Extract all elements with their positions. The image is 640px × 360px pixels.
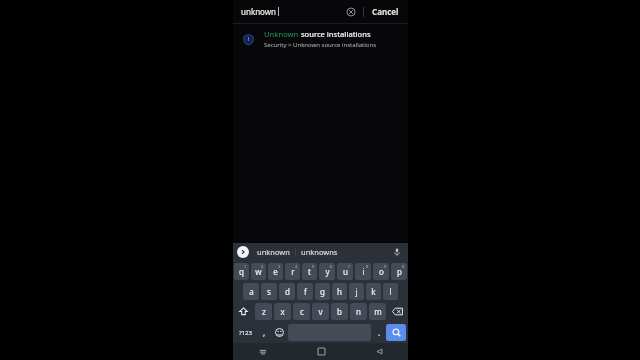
staticText: Security > Unknown source installations [264,41,377,49]
staticText: unknown [257,247,290,257]
button[interactable]: x [274,303,291,320]
button[interactable]: Voice input [390,245,404,259]
staticText: q [239,266,244,277]
staticText: o [379,266,384,277]
staticText: b [337,306,342,317]
staticText: n [356,306,361,317]
staticText: 4 [295,264,298,269]
staticText: 0 [402,264,405,269]
staticText: 6 [330,264,333,269]
staticText: 7 [348,264,351,269]
staticText: 5 [312,264,315,269]
button[interactable]: Period [372,324,386,341]
staticText: , [263,327,266,338]
button[interactable]: Cancel [369,4,402,19]
button[interactable]: y [319,263,335,280]
staticText: unknown [241,6,277,17]
button[interactable]: d [279,283,295,300]
staticText: c [300,306,304,317]
button[interactable]: Key [389,303,406,320]
staticText: w [255,266,262,277]
staticText: v [318,306,323,317]
button[interactable]: Key [235,303,252,320]
button[interactable]: c [293,303,310,320]
button[interactable]: More suggestions [237,246,249,258]
staticText: 8 [366,264,369,269]
staticText: r [291,266,295,277]
button[interactable]: Back [350,343,408,360]
staticText: s [267,286,271,297]
button[interactable]: h [332,283,347,300]
staticText: y [325,266,330,277]
button[interactable]: f [297,283,313,300]
staticText: l [389,286,392,297]
button[interactable]: Emoji [271,324,287,341]
staticText: Unknown [264,29,299,39]
button[interactable]: v [312,303,329,320]
staticText: unknowns [301,247,338,257]
button[interactable]: p [391,263,407,280]
button[interactable]: e [268,263,283,280]
button[interactable]: m [369,303,386,320]
staticText: ?123 [239,329,252,337]
staticText: k [371,286,376,297]
button[interactable]: n [350,303,367,320]
staticText: a [249,286,254,297]
button[interactable]: Clear [344,5,358,19]
staticText: e [273,266,278,277]
button[interactable]: Recents [233,343,292,360]
staticText: x [280,306,285,317]
staticText: z [262,306,266,317]
staticText: f [304,286,307,297]
staticText: 9 [384,264,387,269]
button[interactable]: Unknown [233,24,408,54]
button[interactable]: z [255,303,272,320]
staticText: t [308,266,311,277]
staticText: m [374,306,382,317]
button[interactable]: i [355,263,371,280]
staticText: h [337,286,342,297]
button[interactable]: a [243,283,259,300]
button[interactable]: t [302,263,317,280]
staticText: . [378,327,381,338]
staticText: j [355,286,358,297]
button[interactable]: w [251,263,266,280]
staticText: p [397,266,402,277]
button[interactable]: unknowns [298,247,341,257]
button[interactable]: b [331,303,348,320]
button[interactable]: unknown [254,247,293,257]
button[interactable]: Home [292,343,350,360]
staticText: 2 [261,264,264,269]
staticText: u [343,266,348,277]
button[interactable]: Comma [257,324,271,341]
button[interactable]: o [373,263,389,280]
staticText: 1 [244,264,247,269]
button[interactable]: k [366,283,381,300]
staticText: g [320,286,325,297]
button[interactable]: l [383,283,398,300]
staticText: 3 [278,264,281,269]
staticText: Cancel [372,6,399,17]
staticText: source installations [299,29,371,39]
button[interactable]: q [234,263,249,280]
button[interactable]: Search [386,324,406,341]
button[interactable]: r [285,263,300,280]
staticText: i [362,266,365,277]
button[interactable]: u [337,263,353,280]
button[interactable]: s [261,283,277,300]
button[interactable]: g [315,283,330,300]
staticText: d [285,286,290,297]
button[interactable]: ?123 [235,324,255,341]
button[interactable]: j [349,283,364,300]
